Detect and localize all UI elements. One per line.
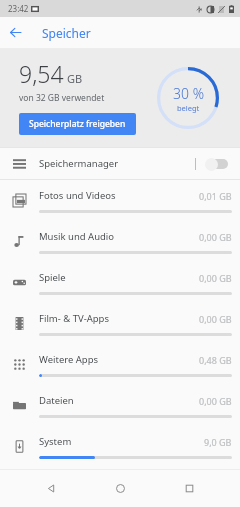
staticText: Speicherplatz freigeben bbox=[29, 118, 126, 130]
button[interactable]: Musik und Audio bbox=[0, 221, 240, 262]
button[interactable]: Speicherplatz freigeben bbox=[19, 113, 136, 135]
button[interactable]: Zurück bbox=[0, 17, 31, 48]
staticText: belegt bbox=[177, 103, 200, 113]
staticText: 30 % bbox=[173, 84, 204, 103]
staticText: 9,54 bbox=[19, 58, 64, 89]
staticText: 0,01 GB bbox=[199, 190, 232, 202]
button[interactable]: Weitere Apps bbox=[0, 344, 240, 385]
staticText: GB bbox=[67, 71, 83, 86]
button[interactable]: Übersicht bbox=[171, 470, 207, 506]
staticText: 23:42 bbox=[8, 3, 29, 14]
staticText: 0,00 GB bbox=[199, 313, 232, 325]
staticText: Fotos und Videos bbox=[39, 189, 116, 202]
button[interactable]: Zurück bbox=[33, 470, 69, 506]
staticText: Weitere Apps bbox=[39, 353, 99, 366]
staticText: von 32 GB verwendet bbox=[19, 92, 105, 104]
button[interactable]: System bbox=[0, 426, 240, 467]
staticText: System bbox=[39, 435, 72, 448]
button[interactable]: Fotos und Videos bbox=[0, 180, 240, 221]
staticText: Film- & TV-Apps bbox=[39, 312, 110, 325]
staticText: Spiele bbox=[39, 271, 66, 284]
staticText: 0,48 GB bbox=[199, 354, 232, 366]
button[interactable]: Spiele bbox=[0, 262, 240, 303]
staticText: Speicher bbox=[42, 25, 91, 41]
button[interactable]: Film- & TV-Apps bbox=[0, 303, 240, 344]
staticText: Dateien bbox=[39, 394, 74, 407]
button[interactable]: Speichermanager bbox=[0, 148, 240, 179]
staticText: 0,00 GB bbox=[199, 395, 232, 407]
button[interactable]: Startseite bbox=[102, 470, 138, 506]
button[interactable]: Dateien bbox=[0, 385, 240, 426]
staticText: Musik und Audio bbox=[39, 230, 115, 243]
staticText: 0,00 GB bbox=[199, 272, 232, 284]
staticText: Speichermanager bbox=[39, 157, 119, 170]
staticText: 0,00 GB bbox=[199, 231, 232, 243]
staticText: 9,0 GB bbox=[204, 436, 232, 448]
button[interactable]: Speichermanager umschalten bbox=[204, 153, 234, 175]
